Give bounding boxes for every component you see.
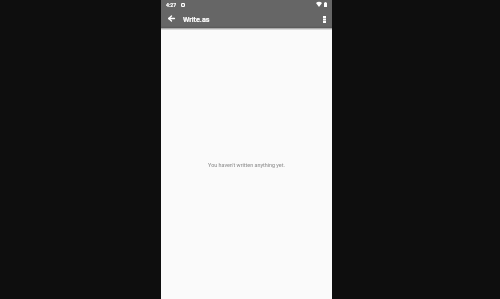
staticText: 4:27 (166, 2, 177, 8)
staticText: You haven't written anything yet. (208, 162, 285, 168)
staticText: Write.as (183, 15, 210, 23)
button[interactable]: Navigate up (163, 10, 180, 27)
button[interactable]: More options (315, 10, 332, 27)
